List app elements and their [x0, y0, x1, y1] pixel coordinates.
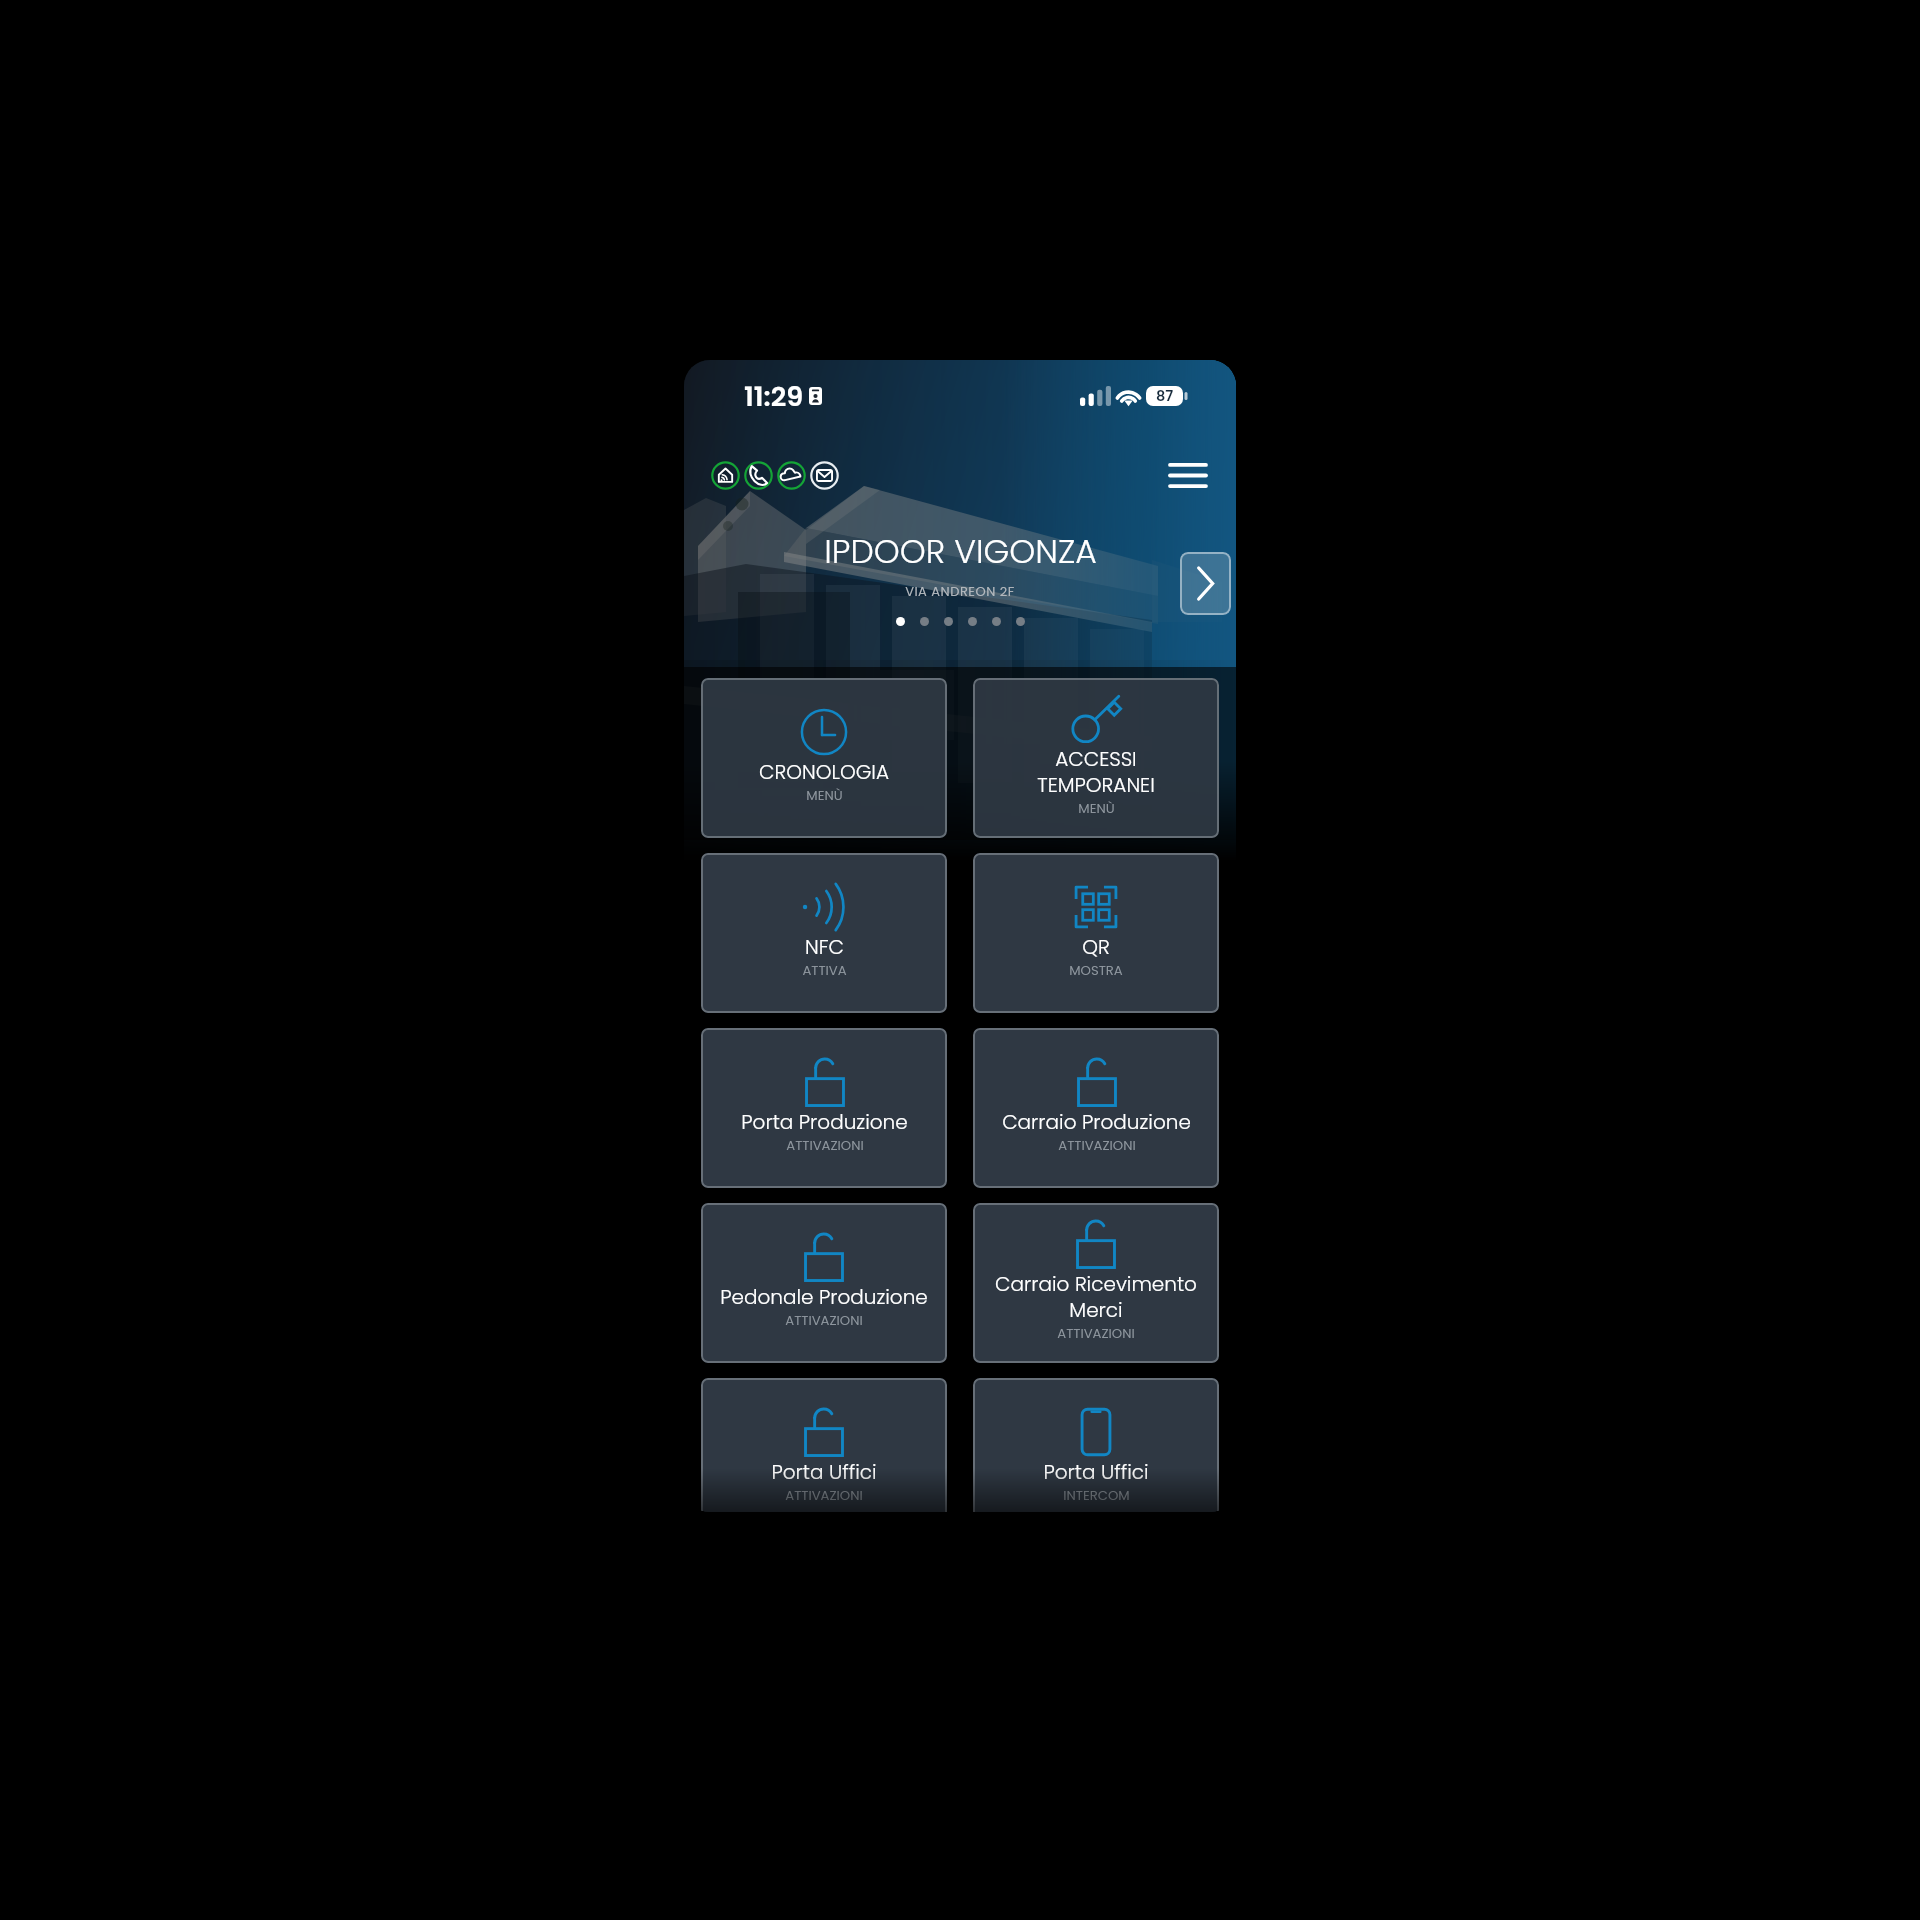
staticText: INTERCOM: [1063, 1486, 1130, 1504]
button[interactable]: Go to page 1: [896, 617, 905, 626]
staticText: 87: [1156, 386, 1174, 406]
button[interactable]: Carraio Produzione: [973, 1028, 1219, 1188]
button[interactable]: Go to page 4: [968, 617, 977, 626]
staticText: ATTIVAZIONI: [1058, 1136, 1136, 1154]
staticText: MENÙ: [1078, 799, 1115, 817]
button[interactable]: ACCESSI TEMPORANEI: [973, 678, 1219, 838]
staticText: MENÙ: [806, 786, 843, 804]
button[interactable]: Porta Produzione: [701, 1028, 947, 1188]
button[interactable]: Pedonale Produzione: [701, 1203, 947, 1363]
staticText: Porta Uffici: [1043, 1458, 1149, 1486]
staticText: Porta Produzione: [741, 1108, 908, 1136]
staticText: ATTIVAZIONI: [786, 1136, 864, 1154]
staticText: ATTIVAZIONI: [785, 1486, 863, 1504]
button[interactable]: Menu: [1162, 453, 1214, 497]
button[interactable]: Porta Uffici: [701, 1378, 947, 1512]
button[interactable]: Call: [744, 461, 773, 490]
button[interactable]: CRONOLOGIA: [701, 678, 947, 838]
button[interactable]: Mail: [810, 461, 839, 490]
button[interactable]: Porta Uffici: [973, 1378, 1219, 1512]
staticText: Porta Uffici: [771, 1458, 877, 1486]
staticText: Pedonale Produzione: [720, 1283, 928, 1311]
button[interactable]: NFC: [701, 853, 947, 1013]
staticText: ACCESSI TEMPORANEI: [1037, 745, 1155, 799]
staticText: IPDOOR VIGONZA: [824, 528, 1097, 574]
staticText: CRONOLOGIA: [759, 758, 889, 786]
staticText: VIA ANDREON 2F: [905, 582, 1015, 600]
button[interactable]: Next: [1180, 552, 1231, 615]
staticText: QR: [1082, 933, 1110, 961]
staticText: Carraio Produzione: [1002, 1108, 1191, 1136]
button[interactable]: Go to page 3: [944, 617, 953, 626]
staticText: Carraio Ricevimento Merci: [995, 1270, 1197, 1324]
button[interactable]: QR: [973, 853, 1219, 1013]
staticText: ATTIVAZIONI: [1057, 1324, 1135, 1342]
staticText: ATTIVA: [802, 961, 847, 979]
button[interactable]: Go to page 6: [1016, 617, 1025, 626]
button[interactable]: Home: [711, 461, 740, 490]
staticText: 11:29: [744, 378, 804, 416]
staticText: NFC: [805, 933, 844, 961]
button[interactable]: Carraio Ricevimento Merci: [973, 1203, 1219, 1363]
staticText: MOSTRA: [1069, 961, 1123, 979]
button[interactable]: Go to page 2: [920, 617, 929, 626]
staticText: ATTIVAZIONI: [785, 1311, 863, 1329]
button[interactable]: Go to page 5: [992, 617, 1001, 626]
button[interactable]: Cloud: [777, 461, 806, 490]
